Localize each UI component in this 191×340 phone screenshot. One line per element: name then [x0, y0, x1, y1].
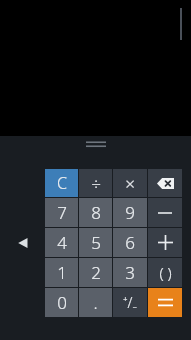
button[interactable]: Equals — [148, 288, 182, 317]
button[interactable]: Minus — [148, 198, 182, 227]
staticText: 9 — [125, 201, 135, 224]
button[interactable]: 2 — [79, 258, 112, 287]
button[interactable]: 0 — [45, 288, 78, 317]
button[interactable]: Divide — [79, 169, 112, 197]
staticText: ⁺/₋ — [123, 293, 137, 312]
staticText: 8 — [91, 201, 101, 224]
button[interactable]: 5 — [79, 228, 112, 257]
button[interactable]: Plus — [148, 228, 182, 257]
staticText: . — [93, 291, 98, 314]
staticText: 5 — [91, 231, 101, 254]
button[interactable]: Parentheses — [148, 258, 182, 287]
button[interactable]: 9 — [113, 198, 147, 227]
staticText: C — [57, 172, 67, 194]
staticText: × — [125, 172, 135, 195]
staticText: 0 — [57, 291, 67, 314]
button[interactable]: 7 — [45, 198, 78, 227]
button[interactable]: Clear — [45, 169, 78, 197]
button[interactable]: 6 — [113, 228, 147, 257]
staticText: ( ) — [159, 263, 172, 283]
button[interactable]: Multiply — [113, 169, 147, 197]
button[interactable]: Plus minus sign — [113, 288, 147, 317]
button[interactable]: Drag handle — [86, 140, 106, 148]
staticText: 3 — [125, 261, 135, 284]
button[interactable]: Collapse keypad — [15, 235, 31, 251]
button[interactable]: Decimal point — [79, 288, 112, 317]
staticText: 4 — [57, 231, 67, 254]
staticText: 1 — [57, 261, 67, 284]
button[interactable]: Backspace — [148, 169, 182, 197]
staticText: ÷ — [91, 172, 101, 195]
button[interactable]: 3 — [113, 258, 147, 287]
staticText: 7 — [57, 201, 67, 224]
button[interactable]: 8 — [79, 198, 112, 227]
staticText: 2 — [91, 261, 101, 284]
button[interactable]: 1 — [45, 258, 78, 287]
staticText: 6 — [125, 231, 135, 254]
button[interactable]: 4 — [45, 228, 78, 257]
